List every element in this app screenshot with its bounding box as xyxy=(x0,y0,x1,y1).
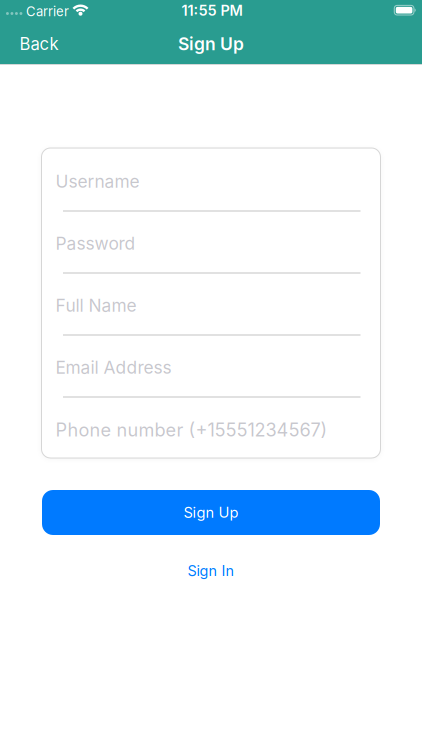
staticText: Username xyxy=(55,171,139,192)
button[interactable]: Password xyxy=(41,210,380,272)
staticText: Back xyxy=(19,34,58,54)
button[interactable]: Sign In xyxy=(187,562,234,579)
staticText: Email Address xyxy=(55,357,171,378)
staticText: Sign Up xyxy=(183,504,238,521)
button[interactable]: Email Address xyxy=(41,334,380,396)
staticText: Full Name xyxy=(55,295,136,316)
staticText: Sign In xyxy=(187,562,234,579)
button[interactable]: Full Name xyxy=(41,272,380,334)
button[interactable]: Back xyxy=(19,34,58,54)
staticText: Password xyxy=(55,233,135,254)
staticText: Phone number (+15551234567) xyxy=(55,419,327,441)
button[interactable]: Username xyxy=(41,148,380,210)
staticText: Sign Up xyxy=(178,33,244,54)
button[interactable]: Sign Up xyxy=(42,490,380,535)
staticText: Carrier xyxy=(26,3,69,19)
button[interactable]: Phone number (+15551234567) xyxy=(41,396,380,458)
staticText: 11:55 PM xyxy=(181,2,242,19)
